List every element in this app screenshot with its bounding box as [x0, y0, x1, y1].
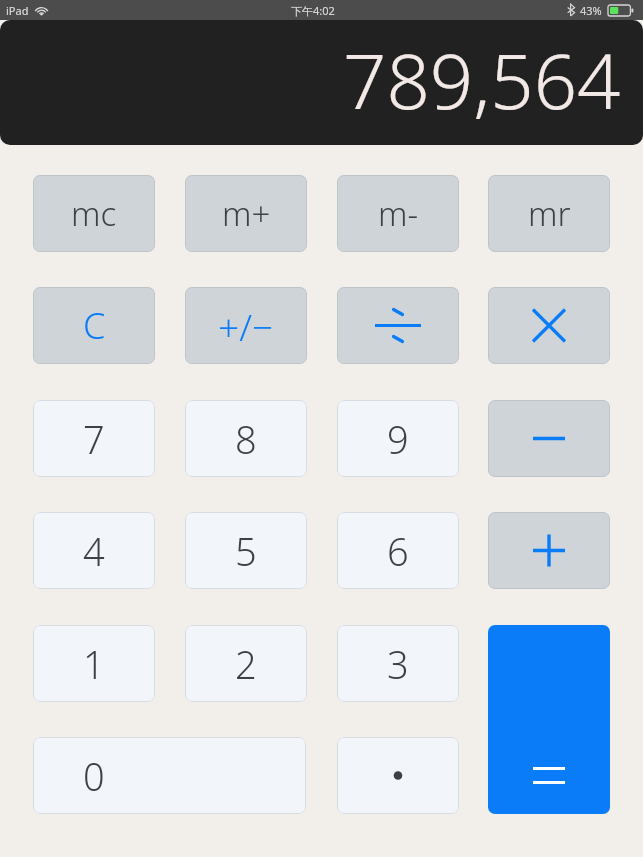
staticText: m+	[222, 191, 271, 236]
button[interactable]: 4	[33, 512, 155, 589]
staticText: 3	[387, 638, 409, 690]
button[interactable]: 3	[337, 625, 459, 702]
staticText: 7	[83, 413, 105, 465]
button[interactable]: Plus	[488, 512, 610, 589]
button[interactable]: 0	[33, 737, 306, 814]
staticText: 1	[83, 638, 105, 690]
staticText: mr	[528, 191, 571, 236]
staticText: 下午4:02	[291, 3, 335, 18]
staticText: m-	[378, 191, 419, 236]
button[interactable]: 9	[337, 400, 459, 477]
staticText: 789,564	[343, 28, 621, 132]
button[interactable]: 1	[33, 625, 155, 702]
button[interactable]: Decimal point	[337, 737, 459, 814]
button[interactable]: +/−	[185, 287, 307, 364]
button[interactable]: 6	[337, 512, 459, 589]
staticText: mc	[71, 191, 117, 236]
staticText: +/−	[218, 301, 274, 351]
button[interactable]: 7	[33, 400, 155, 477]
button[interactable]: Equals	[488, 625, 610, 814]
staticText: 9	[387, 413, 409, 465]
button[interactable]: mc	[33, 175, 155, 252]
staticText: 0	[83, 750, 105, 802]
button[interactable]: 5	[185, 512, 307, 589]
staticText: 6	[387, 525, 409, 577]
button[interactable]: 2	[185, 625, 307, 702]
button[interactable]: Minus	[488, 400, 610, 477]
staticText: 5	[235, 525, 257, 577]
button[interactable]: m-	[337, 175, 459, 252]
staticText: 43%	[580, 3, 602, 18]
staticText: C	[83, 301, 106, 350]
button[interactable]: C	[33, 287, 155, 364]
button[interactable]: Multiply	[488, 287, 610, 364]
staticText: iPad	[6, 3, 29, 18]
button[interactable]: m+	[185, 175, 307, 252]
button[interactable]: mr	[488, 175, 610, 252]
button[interactable]: 8	[185, 400, 307, 477]
button[interactable]: Divide	[337, 287, 459, 364]
staticText: 2	[235, 638, 257, 690]
staticText: 4	[83, 525, 105, 577]
staticText: 8	[235, 413, 257, 465]
